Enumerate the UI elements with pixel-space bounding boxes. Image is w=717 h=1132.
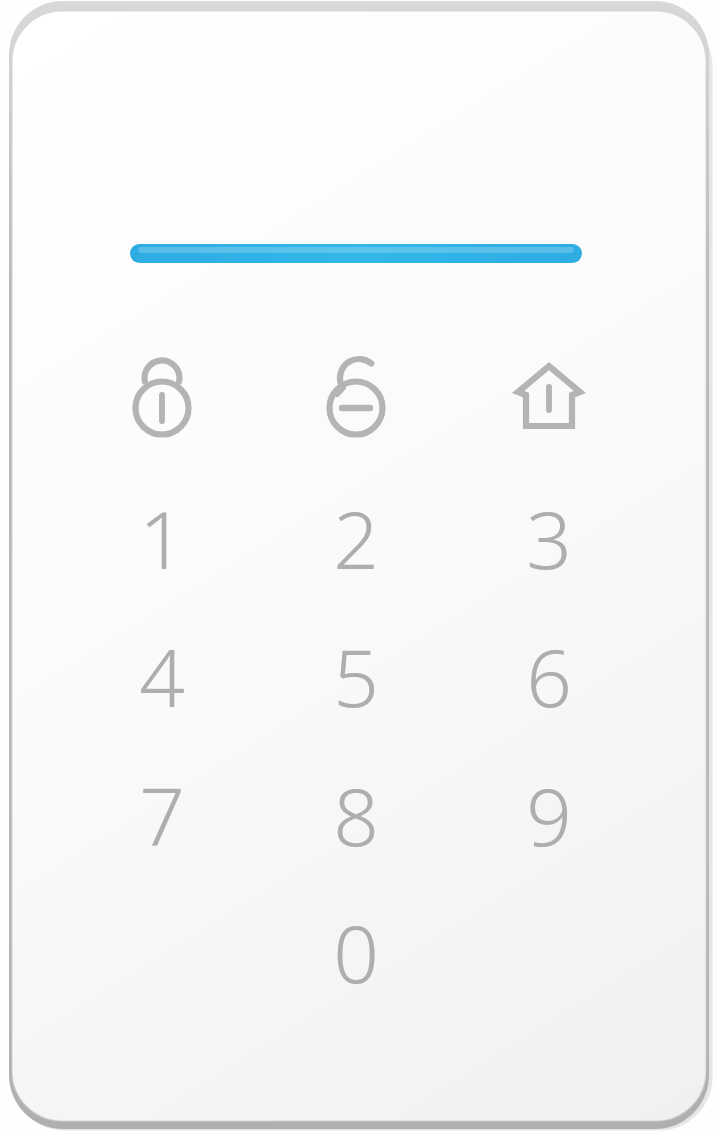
button[interactable]: Disarm xyxy=(296,337,416,457)
staticText: 6 xyxy=(526,621,572,730)
staticText: 1 xyxy=(139,483,185,592)
staticText: 9 xyxy=(526,760,572,869)
staticText: 3 xyxy=(526,483,572,592)
button[interactable]: 1 xyxy=(102,477,222,597)
staticText: 8 xyxy=(333,760,379,869)
staticText: 7 xyxy=(139,760,185,869)
button[interactable]: Arm away xyxy=(102,337,222,457)
button[interactable]: 9 xyxy=(489,754,609,874)
staticText: 5 xyxy=(333,621,379,730)
button[interactable]: 0 xyxy=(296,891,416,1011)
button[interactable]: 7 xyxy=(102,754,222,874)
staticText: 2 xyxy=(333,483,379,592)
button[interactable]: 2 xyxy=(296,477,416,597)
button[interactable]: Arm home xyxy=(489,337,609,457)
button[interactable]: 8 xyxy=(296,754,416,874)
staticText: 0 xyxy=(333,897,379,1006)
button[interactable]: 3 xyxy=(489,477,609,597)
button[interactable]: 4 xyxy=(102,615,222,735)
button[interactable]: 6 xyxy=(489,615,609,735)
staticText: 4 xyxy=(139,621,185,730)
button[interactable]: 5 xyxy=(296,615,416,735)
